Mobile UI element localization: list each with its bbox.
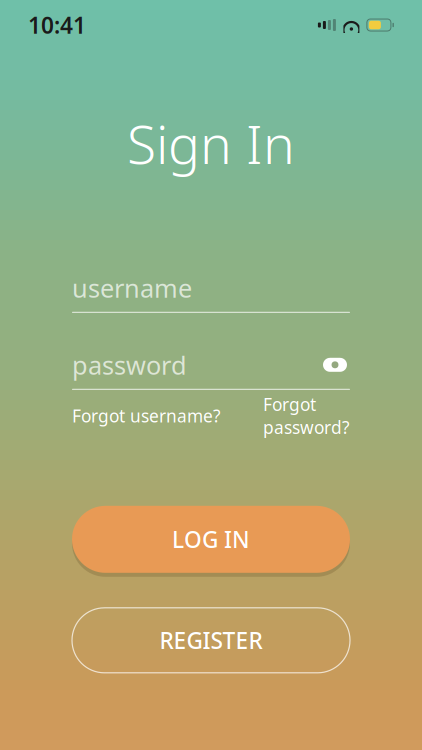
button[interactable]: LOG IN [72,504,350,575]
staticText: Forgot username? [72,404,221,427]
staticText: Forgot password? [263,393,350,439]
staticText: password [72,348,187,382]
staticText: username [72,271,192,305]
staticText: Sign In [127,108,295,179]
button[interactable]: Forgot username? [72,404,221,427]
staticText: REGISTER [159,625,262,655]
button[interactable]: Forgot password? [263,393,350,439]
staticText: 10:41 [28,10,86,40]
staticText: LOG IN [172,524,250,554]
button[interactable]: REGISTER [72,608,350,673]
button[interactable]: Show password [320,353,350,377]
